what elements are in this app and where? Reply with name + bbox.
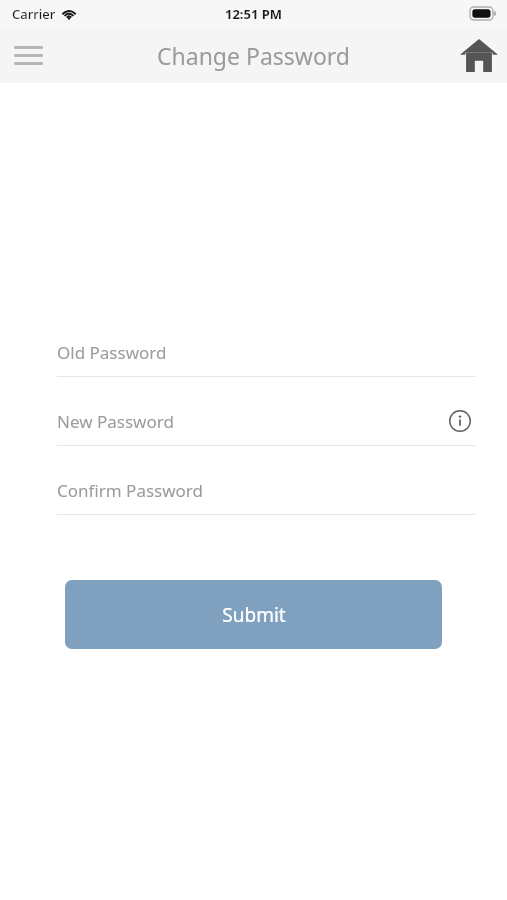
staticText: New Password bbox=[57, 410, 445, 433]
button[interactable]: Confirm Password bbox=[57, 475, 475, 515]
button[interactable]: New Password bbox=[57, 406, 475, 446]
staticText: Change Password bbox=[157, 40, 350, 71]
staticText: Carrier bbox=[12, 5, 56, 23]
button[interactable]: Old Password bbox=[57, 337, 475, 377]
staticText: Old Password bbox=[57, 341, 445, 364]
button[interactable]: Home bbox=[451, 27, 507, 83]
staticText: Confirm Password bbox=[57, 479, 445, 502]
button[interactable]: Open navigation menu bbox=[0, 27, 56, 83]
button[interactable]: Submit bbox=[65, 580, 442, 649]
staticText: 12:51 PM bbox=[225, 5, 283, 23]
staticText: Submit bbox=[222, 602, 286, 628]
button[interactable]: Password requirements info bbox=[445, 406, 475, 436]
